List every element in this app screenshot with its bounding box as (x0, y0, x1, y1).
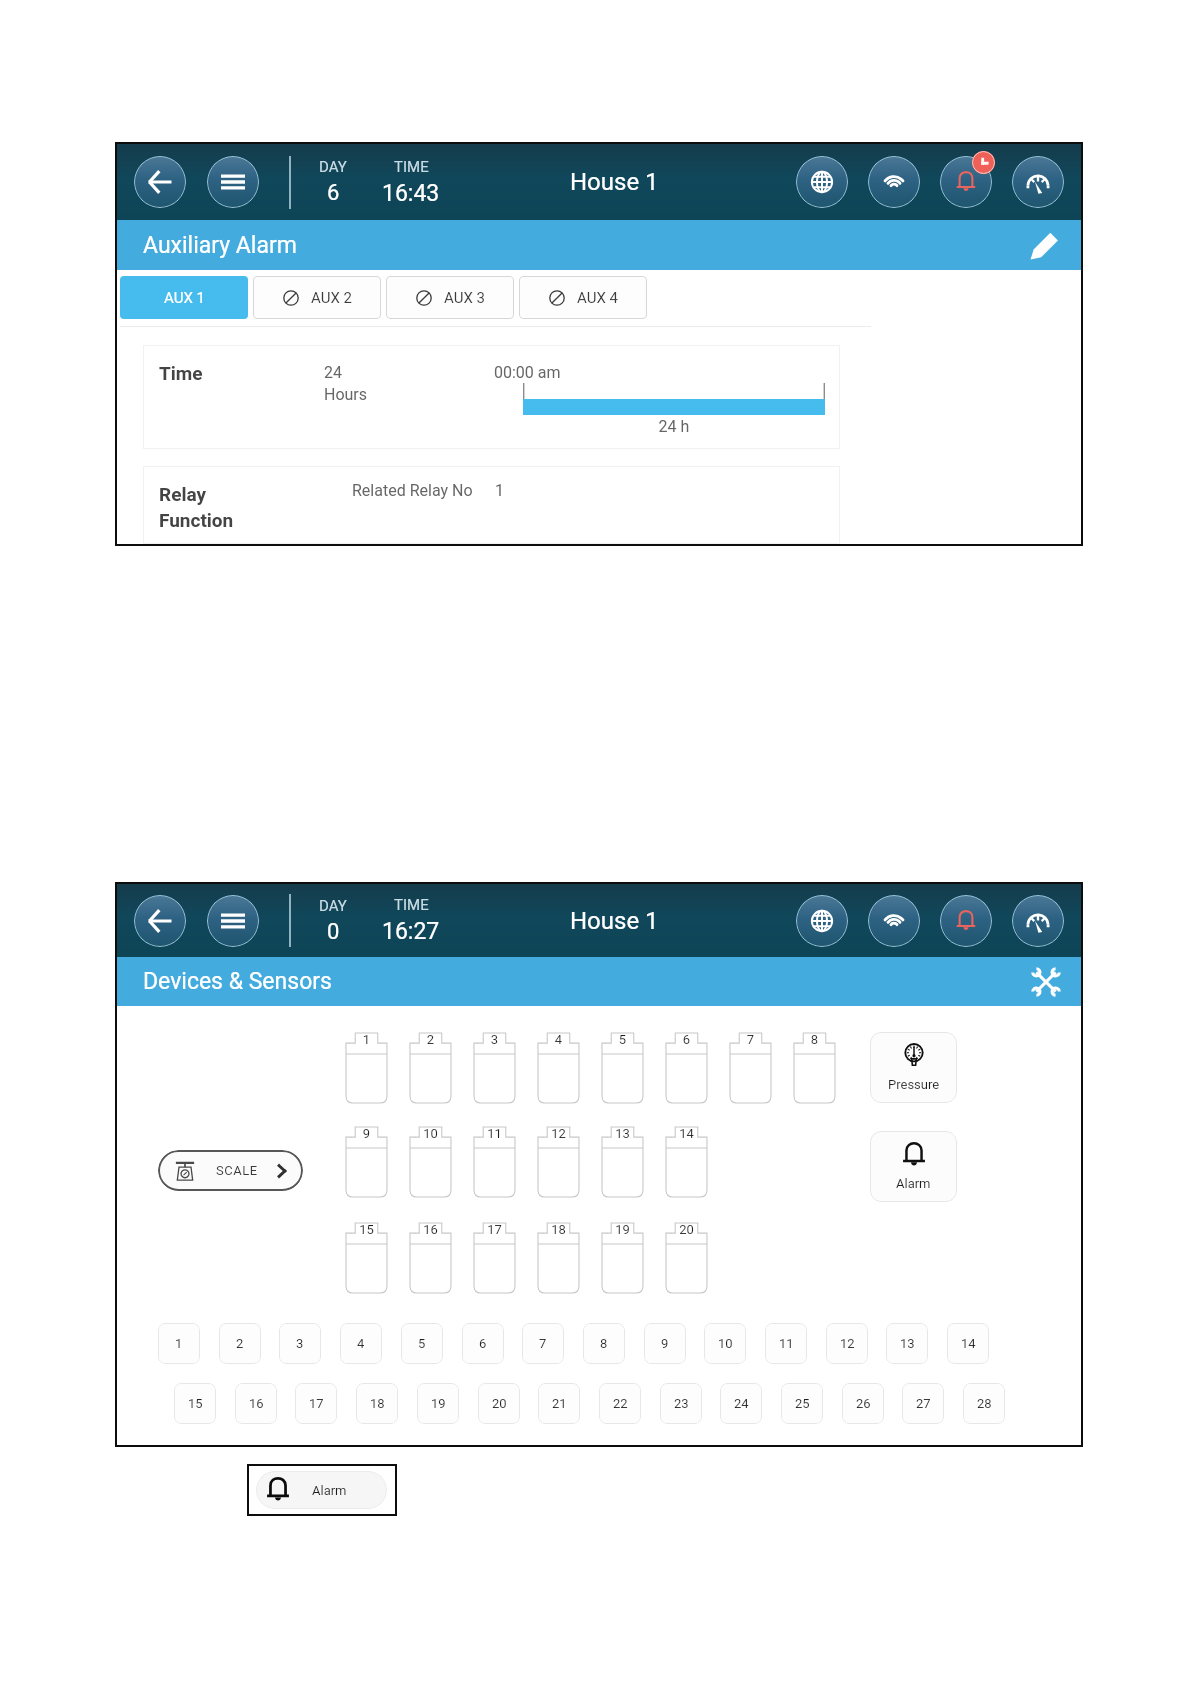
button[interactable]: 2 (219, 1323, 261, 1364)
staticText: 7 (730, 1032, 771, 1047)
staticText: 27 (916, 1396, 931, 1411)
staticText: AUX 4 (577, 289, 618, 307)
staticText: 19 (431, 1396, 446, 1411)
staticText: 17 (309, 1396, 324, 1411)
button[interactable]: Edit (1026, 226, 1064, 264)
button[interactable]: Menu (207, 156, 259, 208)
staticText: 6 (666, 1032, 707, 1047)
staticText: 18 (538, 1222, 579, 1237)
button[interactable]: 16 (235, 1383, 277, 1424)
button[interactable]: Network (796, 895, 848, 947)
button[interactable]: 9 (644, 1323, 686, 1364)
staticText: DAY (319, 158, 347, 176)
staticText: House 1 (570, 907, 659, 935)
button[interactable]: Back (134, 895, 186, 947)
button[interactable]: Back (134, 156, 186, 208)
button[interactable]: 17 (295, 1383, 337, 1424)
staticText: SCALE (216, 1163, 258, 1178)
button[interactable]: 13 (886, 1323, 928, 1364)
staticText: 0 (327, 919, 340, 945)
button[interactable]: 11 (765, 1323, 807, 1364)
staticText: DAY (319, 897, 347, 915)
staticText: 4 (538, 1032, 579, 1047)
staticText: AUX 1 (164, 289, 205, 307)
button[interactable]: 18 (356, 1383, 398, 1424)
button[interactable]: AUX 4 (519, 276, 647, 319)
button[interactable]: Status (1012, 895, 1064, 947)
button[interactable]: 26 (842, 1383, 884, 1424)
staticText: 1 (175, 1336, 183, 1351)
staticText: AUX 2 (311, 289, 352, 307)
button[interactable]: Pressure (870, 1032, 957, 1103)
button[interactable]: 4 (340, 1323, 382, 1364)
button[interactable]: 23 (660, 1383, 702, 1424)
staticText: 11 (474, 1126, 515, 1141)
staticText: 5 (602, 1032, 643, 1047)
staticText: Devices & Sensors (143, 968, 332, 995)
staticText: 9 (346, 1126, 387, 1141)
button[interactable]: Wi-Fi (868, 156, 920, 208)
button[interactable]: 8 (583, 1323, 625, 1364)
button[interactable]: 20 (478, 1383, 520, 1424)
button[interactable]: Alarms (940, 895, 992, 947)
staticText: 13 (900, 1336, 915, 1351)
button[interactable]: Alarm (256, 1471, 387, 1509)
staticText: 9 (661, 1336, 669, 1351)
staticText: 8 (600, 1336, 608, 1351)
button[interactable]: 12 (826, 1323, 868, 1364)
button[interactable]: Wi-Fi (868, 895, 920, 947)
button[interactable]: 22 (599, 1383, 641, 1424)
staticText: 16 (249, 1396, 264, 1411)
button[interactable]: 7 (522, 1323, 564, 1364)
button[interactable]: 19 (417, 1383, 459, 1424)
staticText: 24 (324, 363, 342, 382)
staticText: 17 (474, 1222, 515, 1237)
staticText: 24 (734, 1396, 749, 1411)
staticText: 2 (236, 1336, 244, 1351)
button[interactable]: Status (1012, 156, 1064, 208)
staticText: Relay (159, 483, 207, 505)
button[interactable]: Alarms (940, 156, 992, 208)
button[interactable]: 6 (462, 1323, 504, 1364)
staticText: Function (159, 509, 234, 531)
button[interactable]: Menu (207, 895, 259, 947)
staticText: 3 (296, 1336, 304, 1351)
button[interactable]: Network (796, 156, 848, 208)
button[interactable]: 25 (781, 1383, 823, 1424)
staticText: 13 (602, 1126, 643, 1141)
button[interactable]: 28 (963, 1383, 1005, 1424)
staticText: 5 (418, 1336, 426, 1351)
button[interactable]: Alarm (870, 1131, 957, 1202)
button[interactable]: 10 (704, 1323, 746, 1364)
staticText: 14 (666, 1126, 707, 1141)
staticText: Time (159, 362, 203, 384)
staticText: Hours (324, 385, 368, 404)
button[interactable]: AUX 1 (120, 276, 248, 319)
staticText: 14 (961, 1336, 976, 1351)
staticText: House 1 (570, 168, 659, 196)
staticText: 2 (410, 1032, 451, 1047)
button[interactable]: AUX 2 (253, 276, 381, 319)
button[interactable]: 21 (538, 1383, 580, 1424)
staticText: 20 (666, 1222, 707, 1237)
staticText: Auxiliary Alarm (143, 232, 297, 259)
staticText: 15 (346, 1222, 387, 1237)
staticText: 21 (552, 1396, 567, 1411)
button[interactable]: SCALE (158, 1150, 303, 1191)
button[interactable]: 24 (720, 1383, 762, 1424)
staticText: 8 (794, 1032, 835, 1047)
button[interactable]: 5 (401, 1323, 443, 1364)
button[interactable]: 27 (902, 1383, 944, 1424)
staticText: 19 (602, 1222, 643, 1237)
staticText: Alarm (896, 1176, 931, 1191)
button[interactable]: 3 (279, 1323, 321, 1364)
staticText: 1 (495, 481, 504, 500)
staticText: 12 (840, 1336, 855, 1351)
button[interactable]: AUX 3 (386, 276, 514, 319)
staticText: 15 (188, 1396, 203, 1411)
staticText: 25 (795, 1396, 810, 1411)
button[interactable]: Settings (1028, 964, 1064, 1000)
button[interactable]: 14 (947, 1323, 989, 1364)
button[interactable]: 1 (158, 1323, 200, 1364)
button[interactable]: 15 (174, 1383, 216, 1424)
